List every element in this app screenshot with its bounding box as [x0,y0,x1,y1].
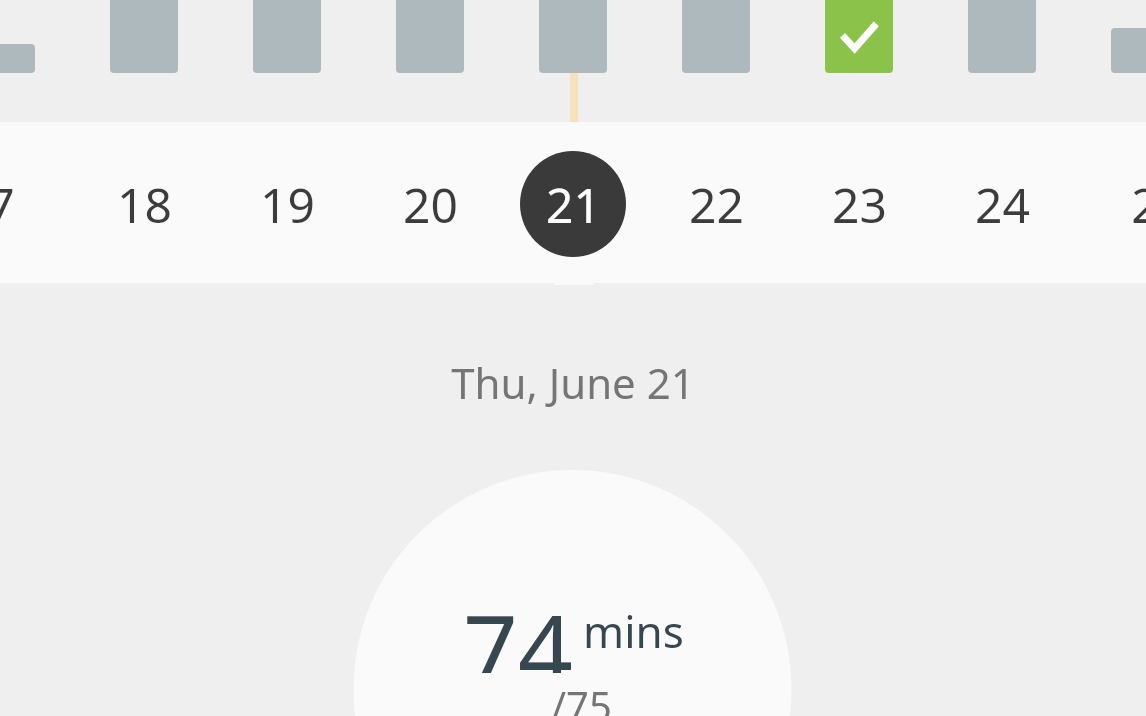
staticText: 23 [832,172,887,237]
button[interactable]: 23 [806,151,912,257]
staticText: 19 [260,172,315,237]
staticText: 24 [975,172,1030,237]
button[interactable] [1111,28,1146,73]
button[interactable]: 20 [377,151,483,257]
staticText: 22 [689,172,744,237]
button[interactable]: 24 [949,151,1055,257]
staticText: 7 [0,172,15,237]
staticText: 21 [546,172,601,237]
button[interactable]: 22 [663,151,769,257]
button[interactable]: 7 [0,151,54,257]
staticText: mins [583,601,684,661]
staticText: 2 [1131,172,1146,237]
button[interactable]: 21 [520,151,626,257]
staticText: 18 [117,172,172,237]
button[interactable]: 2 [1092,151,1146,257]
staticText: 74 [463,583,573,673]
staticText: 20 [403,172,458,237]
other: Goal completed [837,16,881,60]
button[interactable]: 18 [91,151,197,257]
button[interactable]: 19 [234,151,340,257]
staticText: Thu, June 21 [451,354,695,411]
button[interactable] [825,0,893,73]
staticText: /75 [551,678,612,716]
button[interactable] [0,44,35,73]
